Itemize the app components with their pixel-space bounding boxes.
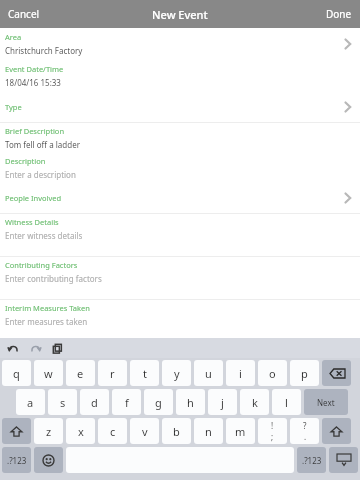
button[interactable]: n <box>194 418 223 444</box>
staticText: e <box>77 366 84 381</box>
staticText: z <box>46 424 52 439</box>
staticText: Interim Measures Taken <box>5 303 90 313</box>
button[interactable]: Open Area <box>336 32 360 56</box>
staticText: m <box>235 424 246 439</box>
staticText: q <box>13 366 20 381</box>
button[interactable]: Hide keyboard <box>329 447 358 473</box>
staticText: t <box>143 366 147 381</box>
staticText: Brief Description <box>5 126 65 136</box>
button[interactable]: Paste <box>48 339 66 357</box>
button[interactable]: t <box>130 360 159 386</box>
staticText: u <box>205 366 212 381</box>
button[interactable]: y <box>162 360 191 386</box>
button[interactable]: i <box>226 360 255 386</box>
staticText: ! <box>271 420 274 431</box>
staticText: y <box>174 366 180 381</box>
button[interactable]: Emoji <box>34 447 63 473</box>
staticText: s <box>60 395 66 410</box>
staticText: Next <box>317 397 335 408</box>
staticText: Area <box>5 32 22 42</box>
staticText: h <box>187 395 194 410</box>
button[interactable]: v <box>130 418 159 444</box>
button[interactable]: Event Date/Time <box>0 60 360 92</box>
staticText: Event Date/Time <box>5 64 64 74</box>
button[interactable]: Shift <box>2 418 31 444</box>
button[interactable]: z <box>34 418 63 444</box>
button[interactable]: s <box>48 389 77 415</box>
button[interactable]: Brief Description <box>0 123 360 153</box>
staticText: d <box>91 395 98 410</box>
button[interactable]: Open People Involved <box>336 186 360 210</box>
button[interactable]: w <box>34 360 63 386</box>
staticText: Done <box>326 7 352 21</box>
staticText: .?123 <box>7 455 27 466</box>
staticText: Enter witness details <box>5 230 83 241</box>
button[interactable]: m <box>226 418 255 444</box>
staticText: Enter contributing factors <box>5 273 102 284</box>
staticText: g <box>155 395 162 410</box>
staticText: j <box>221 395 224 410</box>
button[interactable]: o <box>258 360 287 386</box>
button[interactable]: f <box>112 389 141 415</box>
button[interactable]: Type <box>0 92 360 122</box>
button[interactable]: Redo <box>26 339 44 357</box>
staticText: v <box>142 424 148 439</box>
button[interactable]: l <box>272 389 301 415</box>
button[interactable]: .?123 <box>2 447 31 473</box>
staticText: ? <box>303 420 307 431</box>
button[interactable]: b <box>162 418 191 444</box>
button[interactable]: Shift <box>322 418 351 444</box>
button[interactable]: x <box>66 418 95 444</box>
staticText: Cancel <box>8 7 40 21</box>
button[interactable]: h <box>176 389 205 415</box>
button[interactable]: g <box>144 389 173 415</box>
staticText: People Involved <box>5 193 62 203</box>
staticText: p <box>301 366 308 381</box>
staticText: Description <box>5 156 46 166</box>
staticText: b <box>173 424 180 439</box>
staticText: n <box>205 424 212 439</box>
staticText: Witness Details <box>5 217 59 227</box>
staticText: w <box>44 366 53 381</box>
button[interactable]: ! <box>258 418 287 444</box>
button[interactable]: c <box>98 418 127 444</box>
staticText: o <box>269 366 276 381</box>
button[interactable]: d <box>80 389 109 415</box>
button[interactable]: People Involved <box>0 183 360 213</box>
staticText: .?123 <box>302 455 322 466</box>
staticText: Tom fell off a ladder <box>5 139 80 150</box>
button[interactable]: ? <box>290 418 319 444</box>
staticText: k <box>252 395 258 410</box>
staticText: c <box>110 424 116 439</box>
button[interactable]: Contributing Factors <box>0 257 360 287</box>
button[interactable]: Cancel <box>0 3 48 25</box>
button[interactable]: j <box>208 389 237 415</box>
button[interactable]: Witness Details <box>0 214 360 244</box>
button[interactable]: Done <box>318 3 360 25</box>
staticText: Enter measures taken <box>5 316 88 327</box>
staticText: Contributing Factors <box>5 260 78 270</box>
button[interactable]: Open Type <box>336 95 360 119</box>
staticText: 18/04/16 15:33 <box>5 77 61 88</box>
staticText: Enter a description <box>5 169 76 180</box>
button[interactable]: r <box>98 360 127 386</box>
button[interactable]: Undo <box>4 339 22 357</box>
staticText: ; <box>271 431 274 442</box>
button[interactable]: a <box>16 389 45 415</box>
button[interactable]: q <box>2 360 31 386</box>
button[interactable]: u <box>194 360 223 386</box>
staticText: l <box>285 395 288 410</box>
button[interactable]: .?123 <box>297 447 326 473</box>
button[interactable]: k <box>240 389 269 415</box>
button[interactable]: Description <box>0 153 360 183</box>
button[interactable]: Interim Measures Taken <box>0 300 360 330</box>
staticText: f <box>125 395 129 410</box>
button[interactable]: p <box>290 360 319 386</box>
button[interactable]: Area <box>0 28 360 60</box>
button[interactable]: Next <box>304 389 348 415</box>
staticText: Type <box>5 102 22 112</box>
button[interactable]: Backspace <box>322 360 351 386</box>
button[interactable]: e <box>66 360 95 386</box>
staticText: r <box>110 366 115 381</box>
